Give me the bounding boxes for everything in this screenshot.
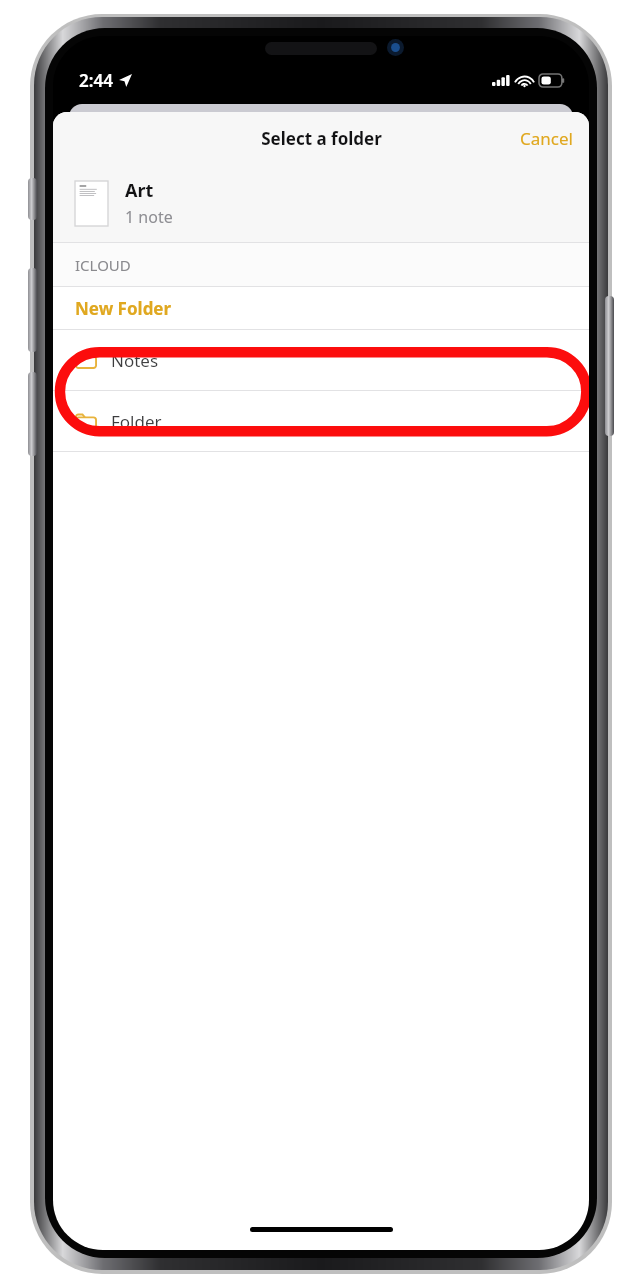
button[interactable]: Art bbox=[53, 164, 589, 242]
button[interactable]: Cancel bbox=[504, 117, 589, 160]
staticText: 1 note bbox=[125, 206, 173, 228]
button[interactable]: Notes bbox=[53, 330, 589, 390]
button[interactable]: Folder bbox=[53, 391, 589, 451]
staticText: Folder bbox=[111, 410, 162, 433]
staticText: Cancel bbox=[520, 127, 573, 150]
staticText: New Folder bbox=[75, 297, 172, 320]
staticText: Select a folder bbox=[261, 127, 382, 150]
staticText: ICLOUD bbox=[75, 255, 131, 275]
staticText: Notes bbox=[111, 349, 159, 372]
staticText: 2:44 bbox=[79, 69, 113, 92]
staticText: Art bbox=[125, 178, 154, 203]
button[interactable]: New Folder bbox=[53, 287, 589, 329]
